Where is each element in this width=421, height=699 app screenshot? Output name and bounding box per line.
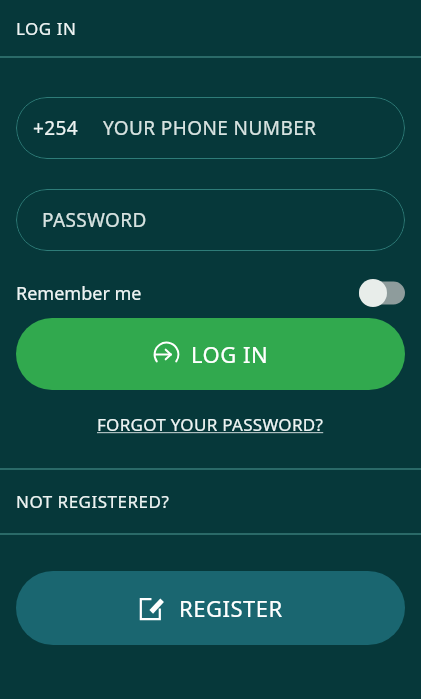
button[interactable]: Register [16, 571, 405, 645]
staticText: PASSWORD [42, 207, 147, 233]
staticText: NOT REGISTERED? [16, 490, 170, 513]
button[interactable]: PASSWORD [16, 189, 405, 251]
button[interactable]: +254 [16, 97, 405, 159]
staticText: Remember me [16, 281, 142, 306]
other: Log in [153, 341, 180, 368]
staticText: FORGOT YOUR PASSWORD? [97, 413, 324, 436]
button[interactable]: Remember me [0, 272, 421, 314]
staticText: +254 [33, 115, 79, 141]
staticText: YOUR PHONE NUMBER [103, 115, 317, 141]
button[interactable]: Remember me toggle [359, 279, 405, 307]
button[interactable]: Log in [16, 318, 405, 390]
staticText: LOG IN [191, 339, 269, 369]
other: Register [139, 595, 165, 621]
staticText: REGISTER [179, 593, 283, 623]
staticText: LOG IN [16, 17, 77, 40]
button[interactable]: FORGOT YOUR PASSWORD? [89, 409, 332, 440]
